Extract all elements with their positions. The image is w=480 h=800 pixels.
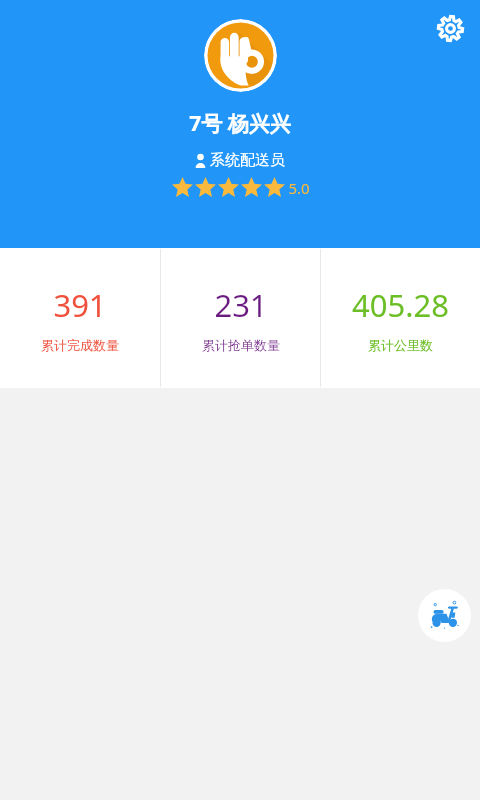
button[interactable]: Settings — [429, 7, 471, 49]
staticText: 231 — [214, 284, 268, 326]
staticText: 7号 杨兴兴 — [189, 109, 291, 138]
staticText: 405.28 — [352, 284, 449, 326]
button[interactable]: 231 — [161, 248, 320, 388]
staticText: 累计抢单数量 — [202, 337, 280, 353]
button[interactable]: Start delivery — [418, 589, 471, 642]
button[interactable]: 405.28 — [321, 248, 480, 388]
staticText: 累计完成数量 — [41, 337, 119, 353]
staticText: 累计公里数 — [368, 337, 433, 353]
button[interactable]: Profile avatar — [204, 19, 277, 92]
button[interactable]: 391 — [0, 248, 160, 388]
staticText: 系统配送员 — [210, 151, 285, 170]
staticText: 5.0 — [288, 178, 310, 198]
staticText: 391 — [53, 284, 107, 326]
